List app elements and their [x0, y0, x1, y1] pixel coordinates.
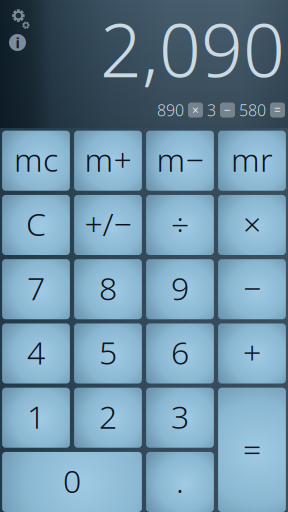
- button[interactable]: 8: [74, 259, 142, 319]
- button[interactable]: 7: [2, 259, 70, 319]
- staticText: 5: [99, 331, 117, 373]
- staticText: m−: [156, 138, 203, 180]
- staticText: 0: [63, 459, 81, 502]
- staticText: ÷: [171, 202, 189, 245]
- button[interactable]: 1: [2, 388, 70, 448]
- staticText: =: [243, 427, 261, 470]
- button[interactable]: 2: [74, 388, 142, 448]
- staticText: 9: [171, 266, 189, 309]
- button[interactable]: 9: [146, 259, 214, 319]
- staticText: −: [243, 266, 261, 309]
- staticText: mc: [14, 138, 58, 180]
- staticText: 2: [99, 395, 117, 437]
- button[interactable]: 3: [146, 388, 214, 448]
- staticText: +: [243, 331, 261, 373]
- button[interactable]: 0: [2, 452, 142, 512]
- button[interactable]: ×: [218, 195, 286, 255]
- staticText: 7: [27, 266, 45, 309]
- staticText: m+: [84, 138, 131, 180]
- button[interactable]: +/−: [74, 195, 142, 255]
- staticText: 580: [239, 99, 266, 121]
- button[interactable]: +: [218, 323, 286, 383]
- staticText: ×: [192, 102, 199, 118]
- button[interactable]: Settings: [9, 6, 33, 28]
- staticText: =: [274, 102, 281, 118]
- staticText: 3: [207, 99, 216, 121]
- staticText: 8: [99, 266, 117, 309]
- staticText: mr: [231, 138, 273, 180]
- button[interactable]: mr: [218, 131, 286, 191]
- staticText: 6: [171, 331, 189, 373]
- button[interactable]: .: [146, 452, 214, 512]
- staticText: 1: [27, 395, 45, 437]
- staticText: 4: [27, 331, 45, 373]
- button[interactable]: m+: [74, 131, 142, 191]
- staticText: +/−: [84, 202, 131, 245]
- staticText: 2,090: [100, 0, 285, 97]
- button[interactable]: 6: [146, 323, 214, 383]
- button[interactable]: mc: [2, 131, 70, 191]
- button[interactable]: 5: [74, 323, 142, 383]
- staticText: i: [15, 33, 19, 52]
- button[interactable]: ÷: [146, 195, 214, 255]
- staticText: 890: [157, 99, 184, 121]
- button[interactable]: 4: [2, 323, 70, 383]
- staticText: −: [224, 102, 231, 118]
- staticText: 3: [171, 395, 189, 437]
- button[interactable]: −: [218, 259, 286, 319]
- button[interactable]: =: [218, 388, 286, 512]
- staticText: ×: [243, 202, 261, 245]
- button[interactable]: C: [2, 195, 70, 255]
- staticText: C: [26, 202, 46, 245]
- button[interactable]: m−: [146, 131, 214, 191]
- staticText: .: [176, 459, 184, 502]
- button[interactable]: About: [9, 34, 26, 51]
